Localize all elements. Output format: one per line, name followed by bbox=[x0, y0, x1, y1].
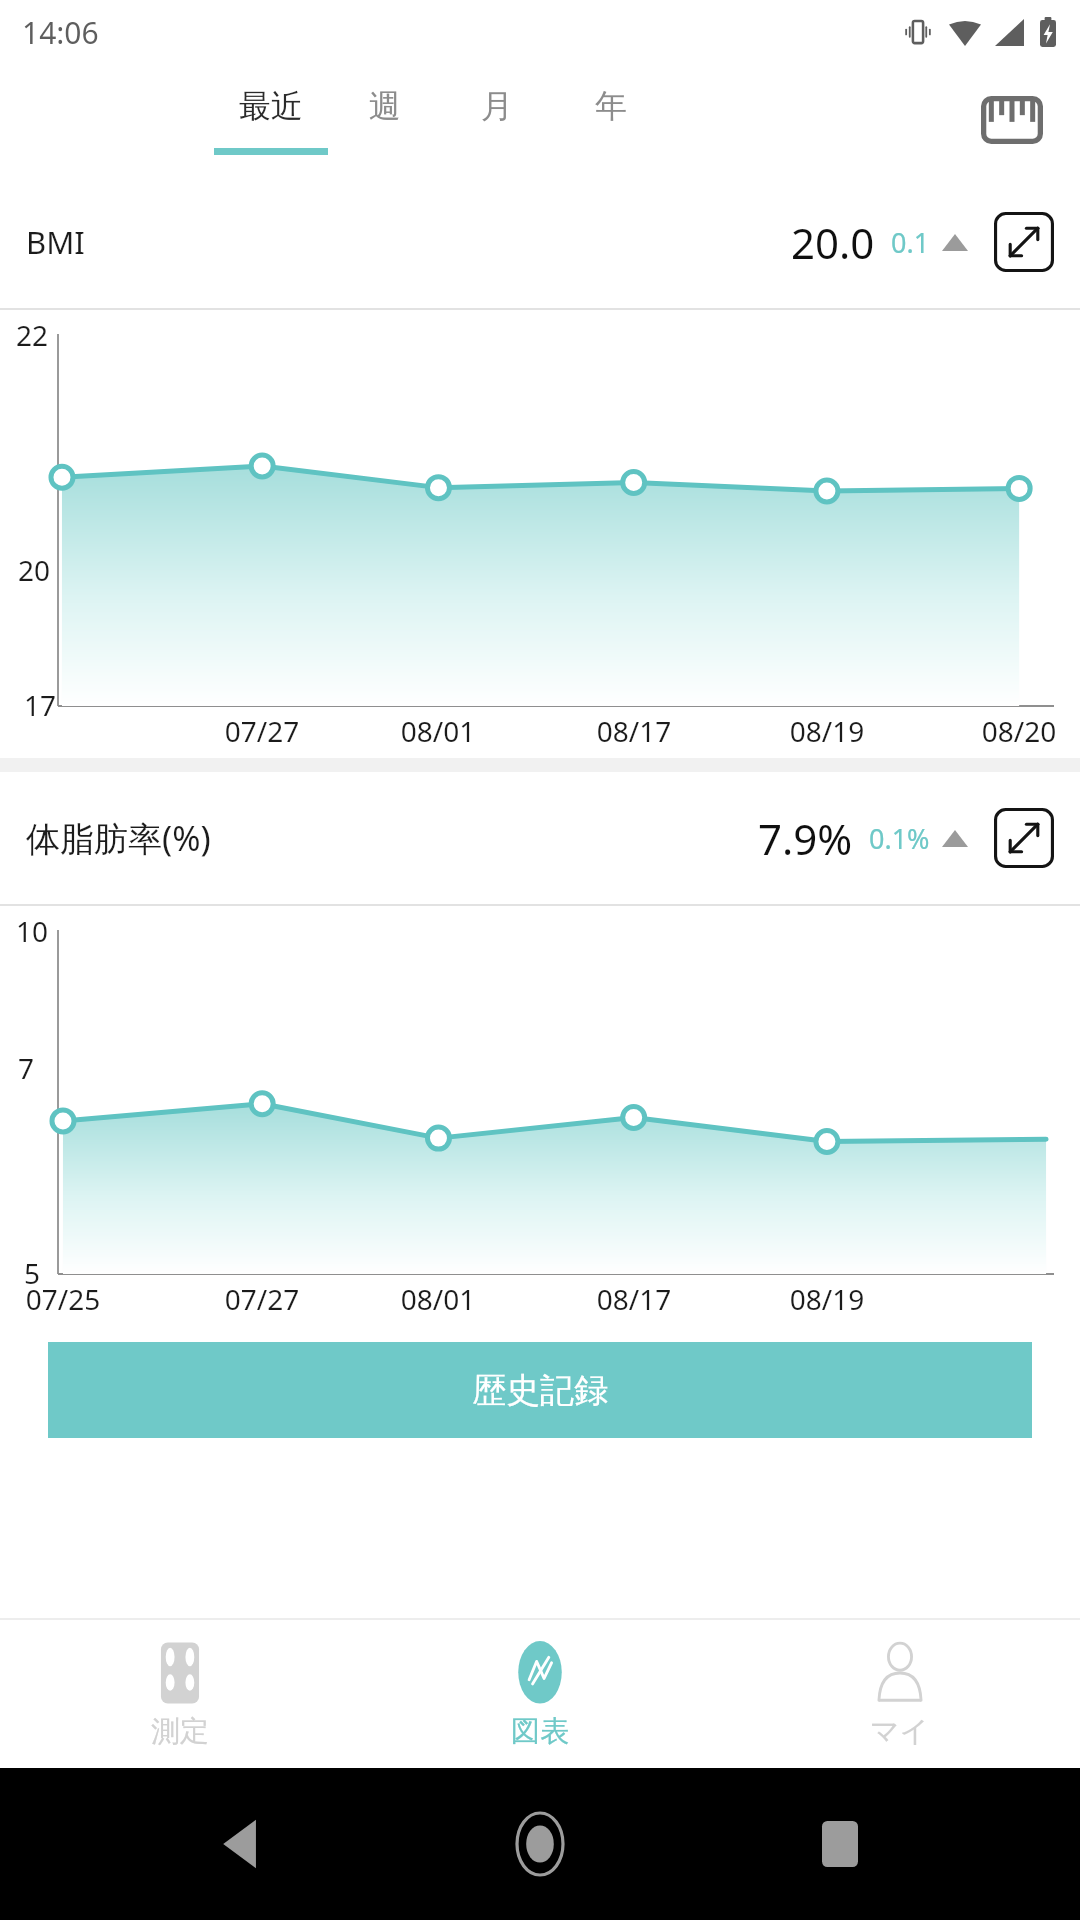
staticText: マイ bbox=[870, 1713, 930, 1750]
staticText: 22 bbox=[16, 316, 49, 354]
button[interactable]: Recents bbox=[780, 1784, 900, 1904]
staticText: 08/01 bbox=[374, 1280, 502, 1318]
staticText: 08/20 bbox=[955, 712, 1080, 750]
staticText: 月 bbox=[481, 86, 513, 126]
staticText: 08/19 bbox=[763, 712, 891, 750]
staticText: 20.0 bbox=[791, 214, 875, 271]
button[interactable]: 歴史記録 bbox=[48, 1342, 1032, 1438]
staticText: 07/27 bbox=[198, 712, 326, 750]
staticText: BMI bbox=[26, 221, 85, 263]
staticText: 最近 bbox=[239, 86, 303, 126]
button[interactable]: 週 bbox=[328, 64, 442, 176]
staticText: 17 bbox=[24, 686, 57, 724]
staticText: 08/19 bbox=[763, 1280, 891, 1318]
staticText: 測定 bbox=[151, 1713, 209, 1750]
staticText: 10 bbox=[16, 912, 49, 950]
staticText: 年 bbox=[595, 86, 627, 126]
staticText: 5 bbox=[24, 1254, 41, 1292]
staticText: 14:06 bbox=[22, 12, 99, 53]
staticText: 歴史記録 bbox=[472, 1369, 608, 1412]
staticText: 07/27 bbox=[198, 1280, 326, 1318]
button[interactable]: 図表 bbox=[360, 1620, 720, 1768]
staticText: 図表 bbox=[511, 1713, 569, 1750]
staticText: 体脂肪率(%) bbox=[26, 815, 211, 861]
staticText: 20 bbox=[18, 551, 51, 589]
staticText: 週 bbox=[369, 86, 401, 126]
staticText: 0.1% bbox=[869, 820, 930, 857]
staticText: 7 bbox=[18, 1049, 35, 1087]
button[interactable]: Back bbox=[180, 1784, 300, 1904]
staticText: 08/17 bbox=[570, 712, 698, 750]
button[interactable]: Expand chart bbox=[992, 210, 1056, 274]
staticText: 07/25 bbox=[0, 1280, 127, 1318]
button[interactable]: 年 bbox=[554, 64, 668, 176]
button[interactable]: 月 bbox=[440, 64, 554, 176]
button[interactable]: 測定 bbox=[0, 1620, 360, 1768]
button[interactable]: Measure bbox=[968, 76, 1056, 164]
button[interactable]: 最近 bbox=[214, 64, 328, 176]
staticText: 08/01 bbox=[374, 712, 502, 750]
button[interactable]: Expand chart bbox=[992, 806, 1056, 870]
staticText: 0.1 bbox=[891, 224, 930, 261]
staticText: 08/17 bbox=[570, 1280, 698, 1318]
button[interactable]: マイ bbox=[720, 1620, 1080, 1768]
button[interactable]: Home bbox=[480, 1784, 600, 1904]
staticText: 7.9% bbox=[758, 810, 853, 867]
